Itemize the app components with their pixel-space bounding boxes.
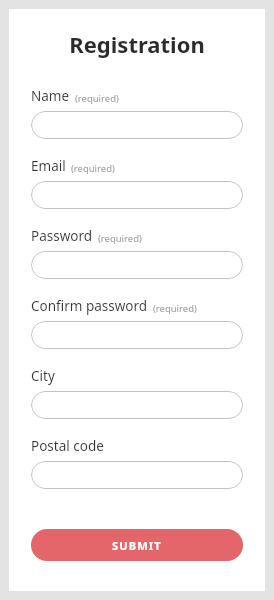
button[interactable]: City input field [31,391,243,419]
staticText: Registration [9,29,265,59]
button[interactable]: Email input field [31,181,243,209]
staticText: Email [31,157,66,175]
staticText: Name [31,87,70,105]
staticText: (required) [70,92,119,105]
button[interactable]: Password input field [31,251,243,279]
staticText: (required) [148,302,197,315]
button[interactable]: Name input field [31,111,243,139]
staticText: City [31,367,55,385]
staticText: (required) [93,232,142,245]
staticText: Confirm password [31,297,148,315]
staticText: Password [31,227,93,245]
staticText: SUBMIT [112,538,162,553]
button[interactable]: Postal code input field [31,461,243,489]
button[interactable]: SUBMIT [31,529,243,561]
staticText: (required) [66,162,115,175]
staticText: Postal code [31,437,104,455]
button[interactable]: Confirm password input field [31,321,243,349]
